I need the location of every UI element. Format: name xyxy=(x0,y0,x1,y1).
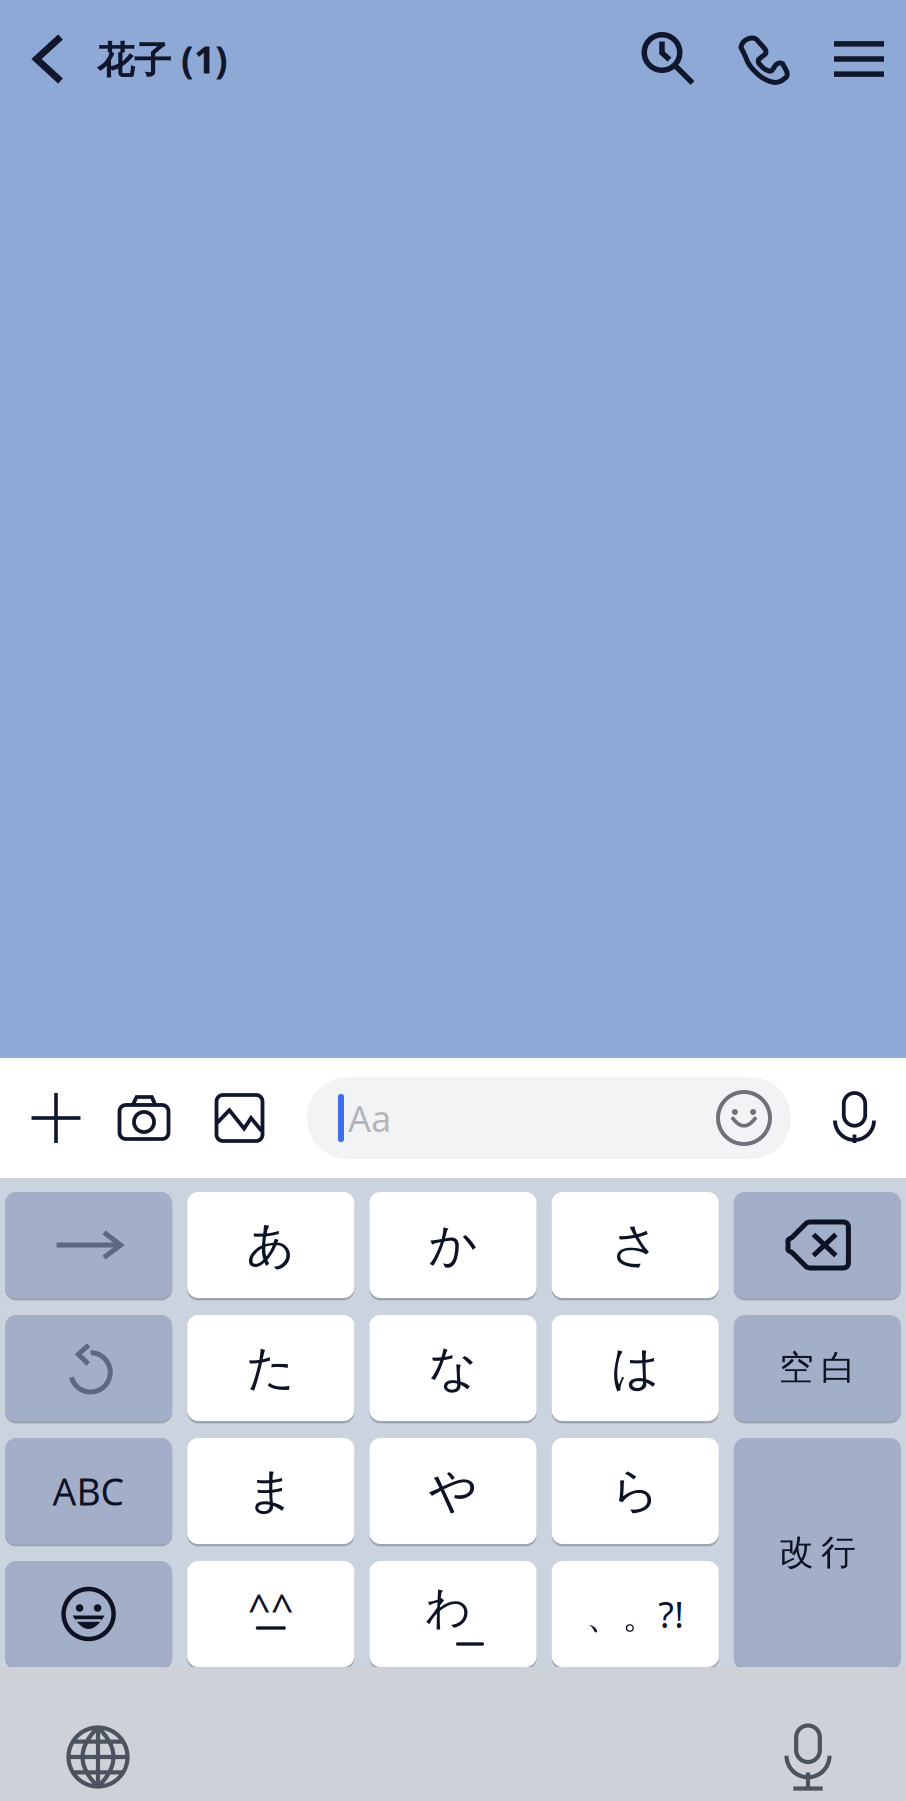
staticText: ま xyxy=(246,1461,295,1520)
button[interactable]: Camera xyxy=(116,1058,172,1178)
staticText: か xyxy=(428,1215,477,1274)
button[interactable]: Search history xyxy=(622,0,715,118)
button[interactable]: Call xyxy=(715,0,812,118)
staticText: や xyxy=(428,1461,477,1520)
button[interactable]: ABC xyxy=(5,1438,172,1544)
button[interactable]: Delete xyxy=(734,1192,901,1298)
button[interactable]: Aa xyxy=(307,1077,791,1159)
button[interactable]: 花子 (1) xyxy=(97,0,228,118)
button[interactable]: や xyxy=(369,1438,537,1544)
staticText: わ xyxy=(425,1580,471,1636)
button[interactable]: Switch keyboard xyxy=(0,1667,196,1801)
button[interactable]: ま xyxy=(187,1438,354,1544)
staticText: た xyxy=(246,1338,295,1397)
button[interactable]: あ xyxy=(187,1192,354,1298)
button[interactable]: Photos xyxy=(172,1058,307,1178)
button[interactable]: Undo xyxy=(5,1315,172,1421)
button[interactable]: Dictation xyxy=(710,1667,906,1801)
button[interactable]: か xyxy=(369,1192,537,1298)
staticText: は xyxy=(611,1338,660,1397)
staticText: な xyxy=(428,1338,477,1397)
button[interactable]: Kaomoji xyxy=(187,1561,354,1667)
button[interactable]: た xyxy=(187,1315,354,1421)
button[interactable]: Emoji xyxy=(5,1561,172,1667)
button[interactable]: More xyxy=(0,1058,116,1178)
staticText: あ xyxy=(246,1215,295,1274)
button[interactable]: Next candidate xyxy=(5,1192,172,1298)
button[interactable]: 、。?! xyxy=(552,1561,719,1667)
button[interactable]: さ xyxy=(552,1192,719,1298)
staticText: 、。?! xyxy=(586,1590,684,1638)
staticText: ABC xyxy=(53,1466,125,1516)
button[interactable]: は xyxy=(552,1315,719,1421)
staticText: Aa xyxy=(348,1094,391,1142)
staticText: 空白 xyxy=(779,1347,856,1389)
button[interactable]: な xyxy=(369,1315,537,1421)
staticText: ら xyxy=(611,1461,660,1520)
button[interactable]: Space xyxy=(734,1315,901,1421)
button[interactable]: ら xyxy=(552,1438,719,1544)
button[interactable]: Voice message xyxy=(799,1058,906,1178)
staticText: ^^ xyxy=(248,1581,294,1634)
button[interactable]: わ xyxy=(369,1561,537,1667)
staticText: さ xyxy=(611,1215,660,1274)
button[interactable]: Back xyxy=(0,0,97,118)
staticText: 花子 (1) xyxy=(97,34,228,84)
button[interactable]: Menu xyxy=(812,0,906,118)
button[interactable]: Return xyxy=(734,1438,901,1667)
staticText: 改行 xyxy=(779,1531,856,1574)
